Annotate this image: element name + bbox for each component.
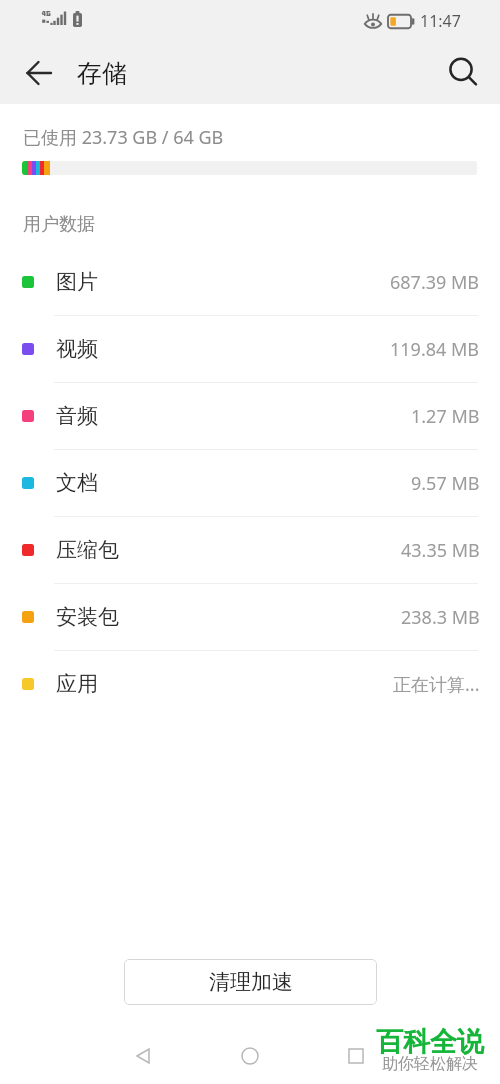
button[interactable]: 压缩包 — [0, 517, 500, 584]
button[interactable]: 安装包 — [0, 584, 500, 651]
staticText: 9.57 MB — [411, 471, 480, 496]
staticText: 压缩包 — [56, 537, 119, 563]
button[interactable]: Home — [228, 1034, 272, 1078]
staticText: 视频 — [56, 336, 98, 362]
staticText: 238.3 MB — [401, 605, 480, 630]
button[interactable]: Recents — [334, 1034, 378, 1078]
button[interactable]: Back — [15, 49, 63, 97]
button[interactable]: 文档 — [0, 450, 500, 517]
staticText: 安装包 — [56, 604, 119, 630]
staticText: 百科全说 — [376, 1025, 484, 1059]
staticText: 应用 — [56, 671, 98, 697]
staticText: 11:47 — [420, 10, 461, 32]
staticText: 图片 — [56, 269, 98, 295]
staticText: 已使用 23.73 GB / 64 GB — [23, 125, 224, 150]
staticText: 助你轻松解决 — [382, 1054, 478, 1071]
staticText: 1.27 MB — [411, 404, 480, 429]
staticText: 43.35 MB — [401, 538, 480, 563]
staticText: 687.39 MB — [390, 270, 480, 295]
button[interactable]: 清理加速 — [124, 959, 377, 1005]
button[interactable]: Search — [440, 49, 488, 97]
button[interactable]: 应用 — [0, 651, 500, 717]
staticText: 清理加速 — [209, 969, 293, 995]
staticText: 音频 — [56, 403, 98, 429]
staticText: 用户数据 — [23, 213, 95, 236]
staticText: 119.84 MB — [390, 337, 480, 362]
button[interactable]: 视频 — [0, 316, 500, 383]
staticText: 文档 — [56, 470, 98, 496]
button[interactable]: 音频 — [0, 383, 500, 450]
staticText: 正在计算... — [393, 672, 480, 697]
staticText: 存储 — [77, 58, 127, 89]
button[interactable]: 图片 — [0, 249, 500, 316]
button[interactable]: Back — [121, 1034, 165, 1078]
